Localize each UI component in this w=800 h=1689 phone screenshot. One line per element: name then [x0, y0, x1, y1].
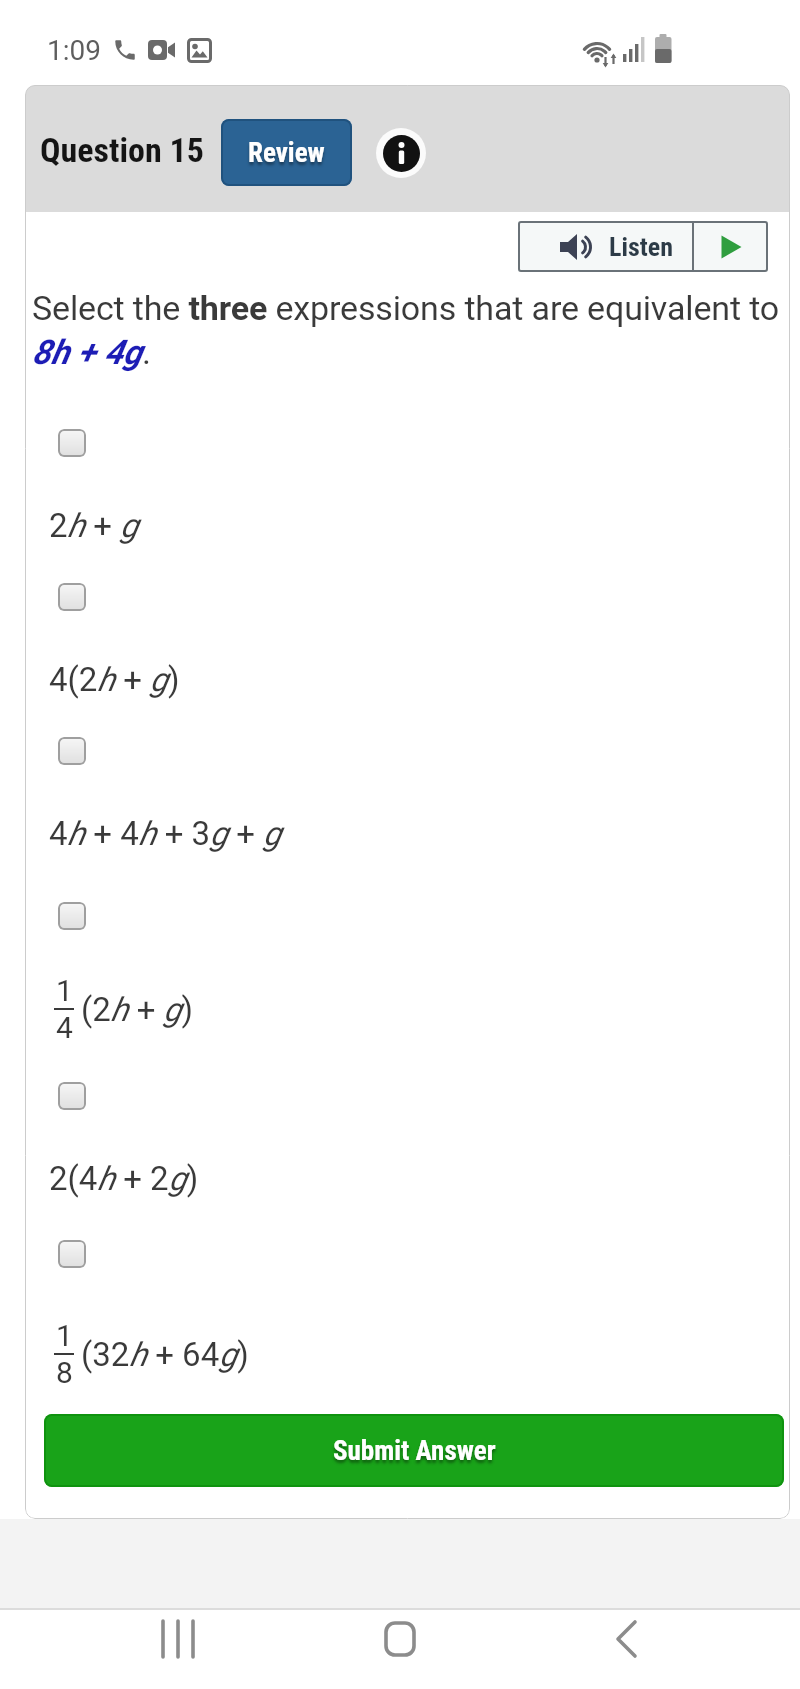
button[interactable]: Submit Answer: [44, 1414, 784, 1487]
button[interactable]: Review: [221, 119, 352, 186]
staticText: 8: [56, 1355, 73, 1390]
button[interactable]: 2(4h + 2g): [39, 1076, 459, 1196]
staticText: 4: [56, 1010, 73, 1045]
button[interactable]: 2h + g: [39, 423, 459, 543]
button[interactable]: 1: [39, 896, 459, 1046]
staticText: Submit Answer: [333, 1435, 496, 1467]
staticText: (32h + 64g): [81, 1335, 249, 1374]
staticText: (2h + g): [81, 990, 194, 1029]
button[interactable]: [600, 1613, 652, 1665]
button[interactable]: [374, 1613, 426, 1665]
staticText: Review: [248, 137, 325, 169]
staticText: 2(4h + 2g): [49, 1159, 199, 1198]
staticText: Listen: [609, 232, 674, 262]
staticText: Question 15: [40, 130, 204, 170]
button[interactable]: 1: [39, 1234, 459, 1384]
staticText: 8h + 4g.: [32, 332, 151, 372]
staticText: 1:09: [47, 34, 101, 67]
button[interactable]: [376, 128, 426, 178]
staticText: 1: [56, 973, 73, 1008]
staticText: 2h + g: [49, 506, 139, 545]
staticText: 4h + 4h + 3g + g: [49, 814, 282, 853]
button[interactable]: Listen: [518, 221, 692, 272]
button[interactable]: 4(2h + g): [39, 577, 459, 697]
staticText: 4(2h + g): [49, 660, 180, 699]
staticText: Select the three expressions that are eq…: [32, 288, 780, 328]
staticText: 1: [56, 1318, 73, 1353]
button[interactable]: 4h + 4h + 3g + g: [39, 731, 459, 851]
button[interactable]: [152, 1613, 204, 1665]
button[interactable]: [694, 221, 768, 272]
